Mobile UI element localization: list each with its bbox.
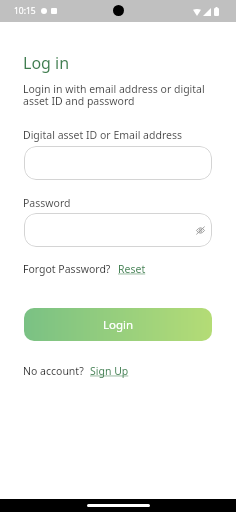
staticText: Log in xyxy=(23,52,70,74)
button[interactable]: Login xyxy=(24,308,212,341)
staticText: Reset xyxy=(118,262,146,276)
button[interactable]: Sign Up xyxy=(90,364,129,378)
staticText: Password xyxy=(23,196,71,210)
staticText: Forgot Password? xyxy=(23,262,111,276)
button[interactable]: Show password xyxy=(192,222,208,238)
staticText: Sign Up xyxy=(90,364,129,378)
button[interactable]: Show password xyxy=(24,213,212,247)
staticText: Login in with email address or digital a… xyxy=(23,82,218,108)
staticText: 10:15 xyxy=(14,5,36,17)
button[interactable] xyxy=(24,146,212,180)
staticText: No account? xyxy=(23,364,84,378)
staticText: Login xyxy=(103,317,134,333)
button[interactable]: Reset xyxy=(118,262,146,276)
staticText: Digital asset ID or Email address xyxy=(23,128,183,142)
